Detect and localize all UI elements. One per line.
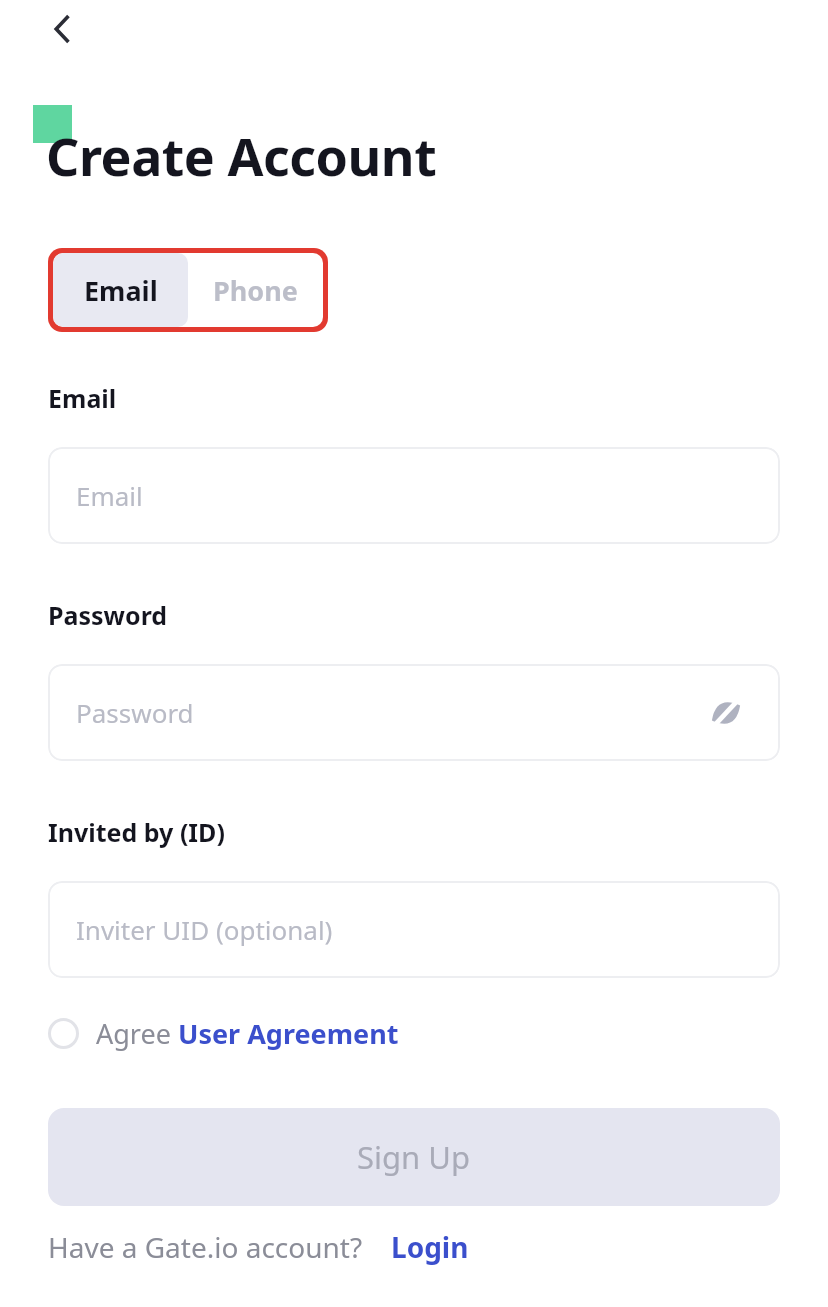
staticText: Phone <box>213 272 298 309</box>
button[interactable]: User Agreement <box>178 1015 399 1052</box>
staticText: Password <box>48 598 168 632</box>
button[interactable]: Email <box>48 447 780 544</box>
staticText: Password <box>76 695 194 730</box>
staticText: Sign Up <box>357 1136 471 1178</box>
staticText: Invited by (ID) <box>48 815 225 849</box>
button[interactable]: Sign Up <box>48 1108 780 1206</box>
button[interactable]: Login <box>391 1228 469 1266</box>
staticText: Email <box>84 272 158 309</box>
button[interactable]: Show password <box>700 687 752 739</box>
staticText: Email <box>48 381 117 415</box>
button[interactable]: Inviter UID (optional) <box>48 881 780 978</box>
staticText: Agree <box>96 1015 178 1052</box>
button[interactable]: Email <box>53 253 188 327</box>
button[interactable]: Agree <box>48 1011 399 1056</box>
button[interactable]: Phone <box>188 253 323 327</box>
staticText: Email <box>76 478 143 513</box>
staticText: Have a Gate.io account? <box>48 1228 363 1266</box>
staticText: Create Account <box>46 120 437 191</box>
staticText: Inviter UID (optional) <box>76 912 333 947</box>
button[interactable]: Back <box>28 0 98 64</box>
button[interactable]: Password <box>48 664 780 761</box>
